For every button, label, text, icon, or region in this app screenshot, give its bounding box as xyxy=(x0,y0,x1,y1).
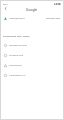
button[interactable]: Back xyxy=(2,5,9,12)
staticText: Google xyxy=(26,7,38,11)
staticText: Notifications ss xyxy=(9,74,26,77)
staticText: Manage data xyxy=(46,17,61,20)
button[interactable]: Preferences xyxy=(1,60,63,70)
staticText: Preferences xyxy=(9,64,22,67)
button[interactable]: Notifications ss xyxy=(1,70,63,80)
button[interactable]: name@gmail.c xyxy=(1,14,63,23)
button[interactable]: Personal info xyxy=(1,50,63,60)
button[interactable]: Manage account xyxy=(1,40,63,50)
staticText: Personalise your Googl xyxy=(3,34,30,37)
staticText: name@gmail.c xyxy=(9,17,25,20)
staticText: Manage account xyxy=(9,44,27,47)
staticText: Personal info xyxy=(9,54,24,57)
staticText: 9:41 xyxy=(3,2,8,5)
